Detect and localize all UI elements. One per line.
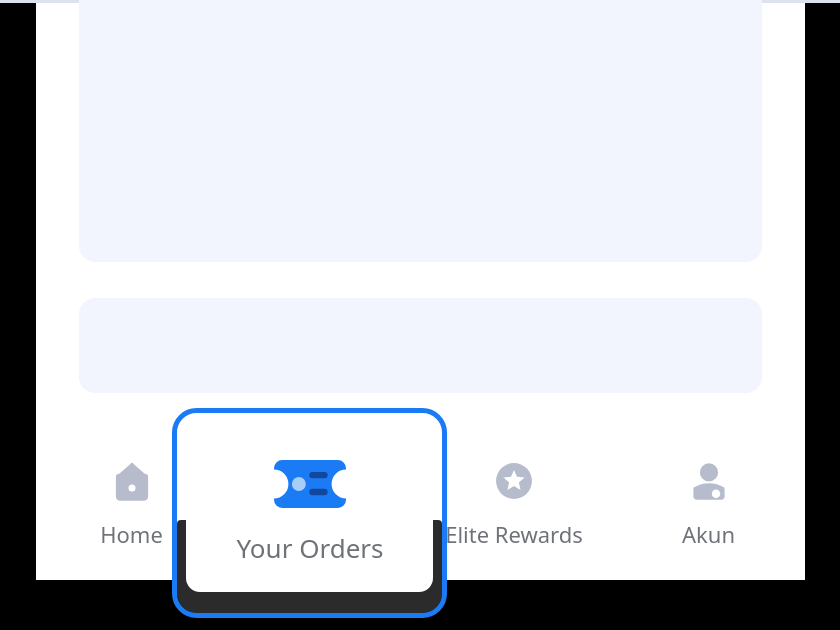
button[interactable]: Your Orders (186, 426, 433, 592)
staticText: Elite Rewards (445, 519, 583, 549)
staticText: Akun (682, 519, 735, 549)
button[interactable]: Elite Rewards (439, 455, 589, 565)
other: Your Orders selected (172, 408, 447, 618)
staticText: Your Orders (236, 530, 384, 565)
staticText: Home (100, 519, 163, 549)
button[interactable]: Akun (633, 455, 783, 565)
button[interactable]: Home (56, 455, 206, 565)
